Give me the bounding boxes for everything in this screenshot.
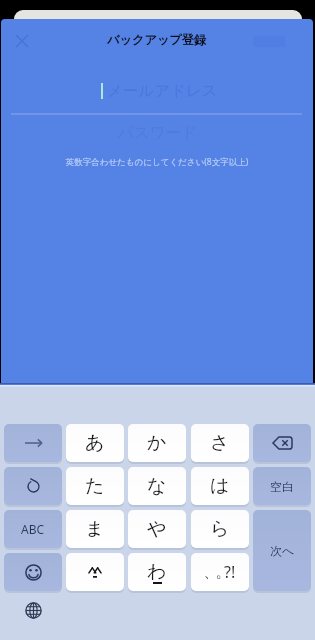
button[interactable]: な [128,467,186,505]
button[interactable]: さ [191,424,249,462]
button[interactable]: Change keyboard [20,597,46,623]
button[interactable]: 次へ [253,510,311,591]
button[interactable]: た [66,467,124,505]
button[interactable]: わ [128,553,186,591]
staticText: あ [85,431,105,455]
staticText: さ [210,431,230,455]
staticText: た [85,474,105,498]
button[interactable] [66,553,124,591]
button[interactable]: ABC [4,510,62,548]
staticText: ま [85,517,105,541]
staticText: な [147,474,167,498]
button[interactable]: か [128,424,186,462]
button[interactable]: 、。 [191,553,249,591]
staticText: ら [210,517,230,541]
button[interactable]: メールアドレス [1,74,313,107]
button[interactable]: ら [191,510,249,548]
button[interactable]: Next character [4,424,62,462]
staticText: か [147,431,167,455]
button[interactable]: Emoji [4,553,62,591]
staticText: わ [147,560,167,584]
staticText: は [210,474,230,498]
button[interactable]: あ [66,424,124,462]
staticText: 空白 [270,479,294,494]
button[interactable]: は [191,467,249,505]
button[interactable]: 空白 [253,467,311,505]
staticText: 、。 [205,563,229,582]
staticText: バックアップ登録 [107,32,207,47]
button[interactable]: や [128,510,186,548]
button[interactable]: Undo [4,467,62,505]
staticText: ABC [21,521,45,537]
button[interactable]: Backspace [253,424,311,462]
staticText: ?! [224,561,236,583]
staticText: 次へ [270,543,295,558]
staticText: 英数字合わせたものにしてください(8文字以上) [1,156,313,168]
button[interactable]: ま [66,510,124,548]
staticText: や [147,517,167,541]
